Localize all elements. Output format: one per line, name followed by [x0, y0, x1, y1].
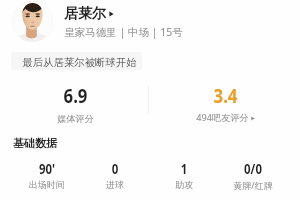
button[interactable]: 90'	[13, 160, 81, 190]
staticText: 助攻	[175, 179, 193, 190]
staticText: 1	[181, 160, 187, 178]
button[interactable]: 6.9	[0, 82, 150, 125]
staticText: 出场时间	[29, 179, 65, 190]
staticText: 90'	[38, 160, 55, 178]
staticText: 黄牌/红牌	[233, 179, 273, 191]
staticText: 居莱尔	[64, 5, 106, 23]
staticText: 3.4	[213, 82, 238, 109]
staticText: 最后从居莱尔被断球开始	[22, 56, 137, 69]
staticText: 6.9	[63, 82, 88, 109]
staticText: 494吧友评分	[196, 111, 249, 124]
staticText: 进球	[106, 179, 124, 190]
staticText: 媒体评分	[57, 113, 94, 125]
button[interactable]: 0/0	[218, 160, 287, 191]
button[interactable]: 最后从居莱尔被断球开始	[11, 52, 142, 70]
staticText: 基础数据	[13, 136, 57, 150]
button[interactable]: 居莱尔	[12, 1, 183, 42]
staticText: 0/0	[244, 160, 262, 178]
button[interactable]: 0	[81, 160, 149, 190]
staticText: 0	[112, 160, 118, 178]
button[interactable]: 3.4	[150, 82, 300, 124]
button[interactable]: 1	[149, 160, 218, 190]
staticText: 皇家马德里 | 中场 | 15号	[64, 25, 183, 39]
